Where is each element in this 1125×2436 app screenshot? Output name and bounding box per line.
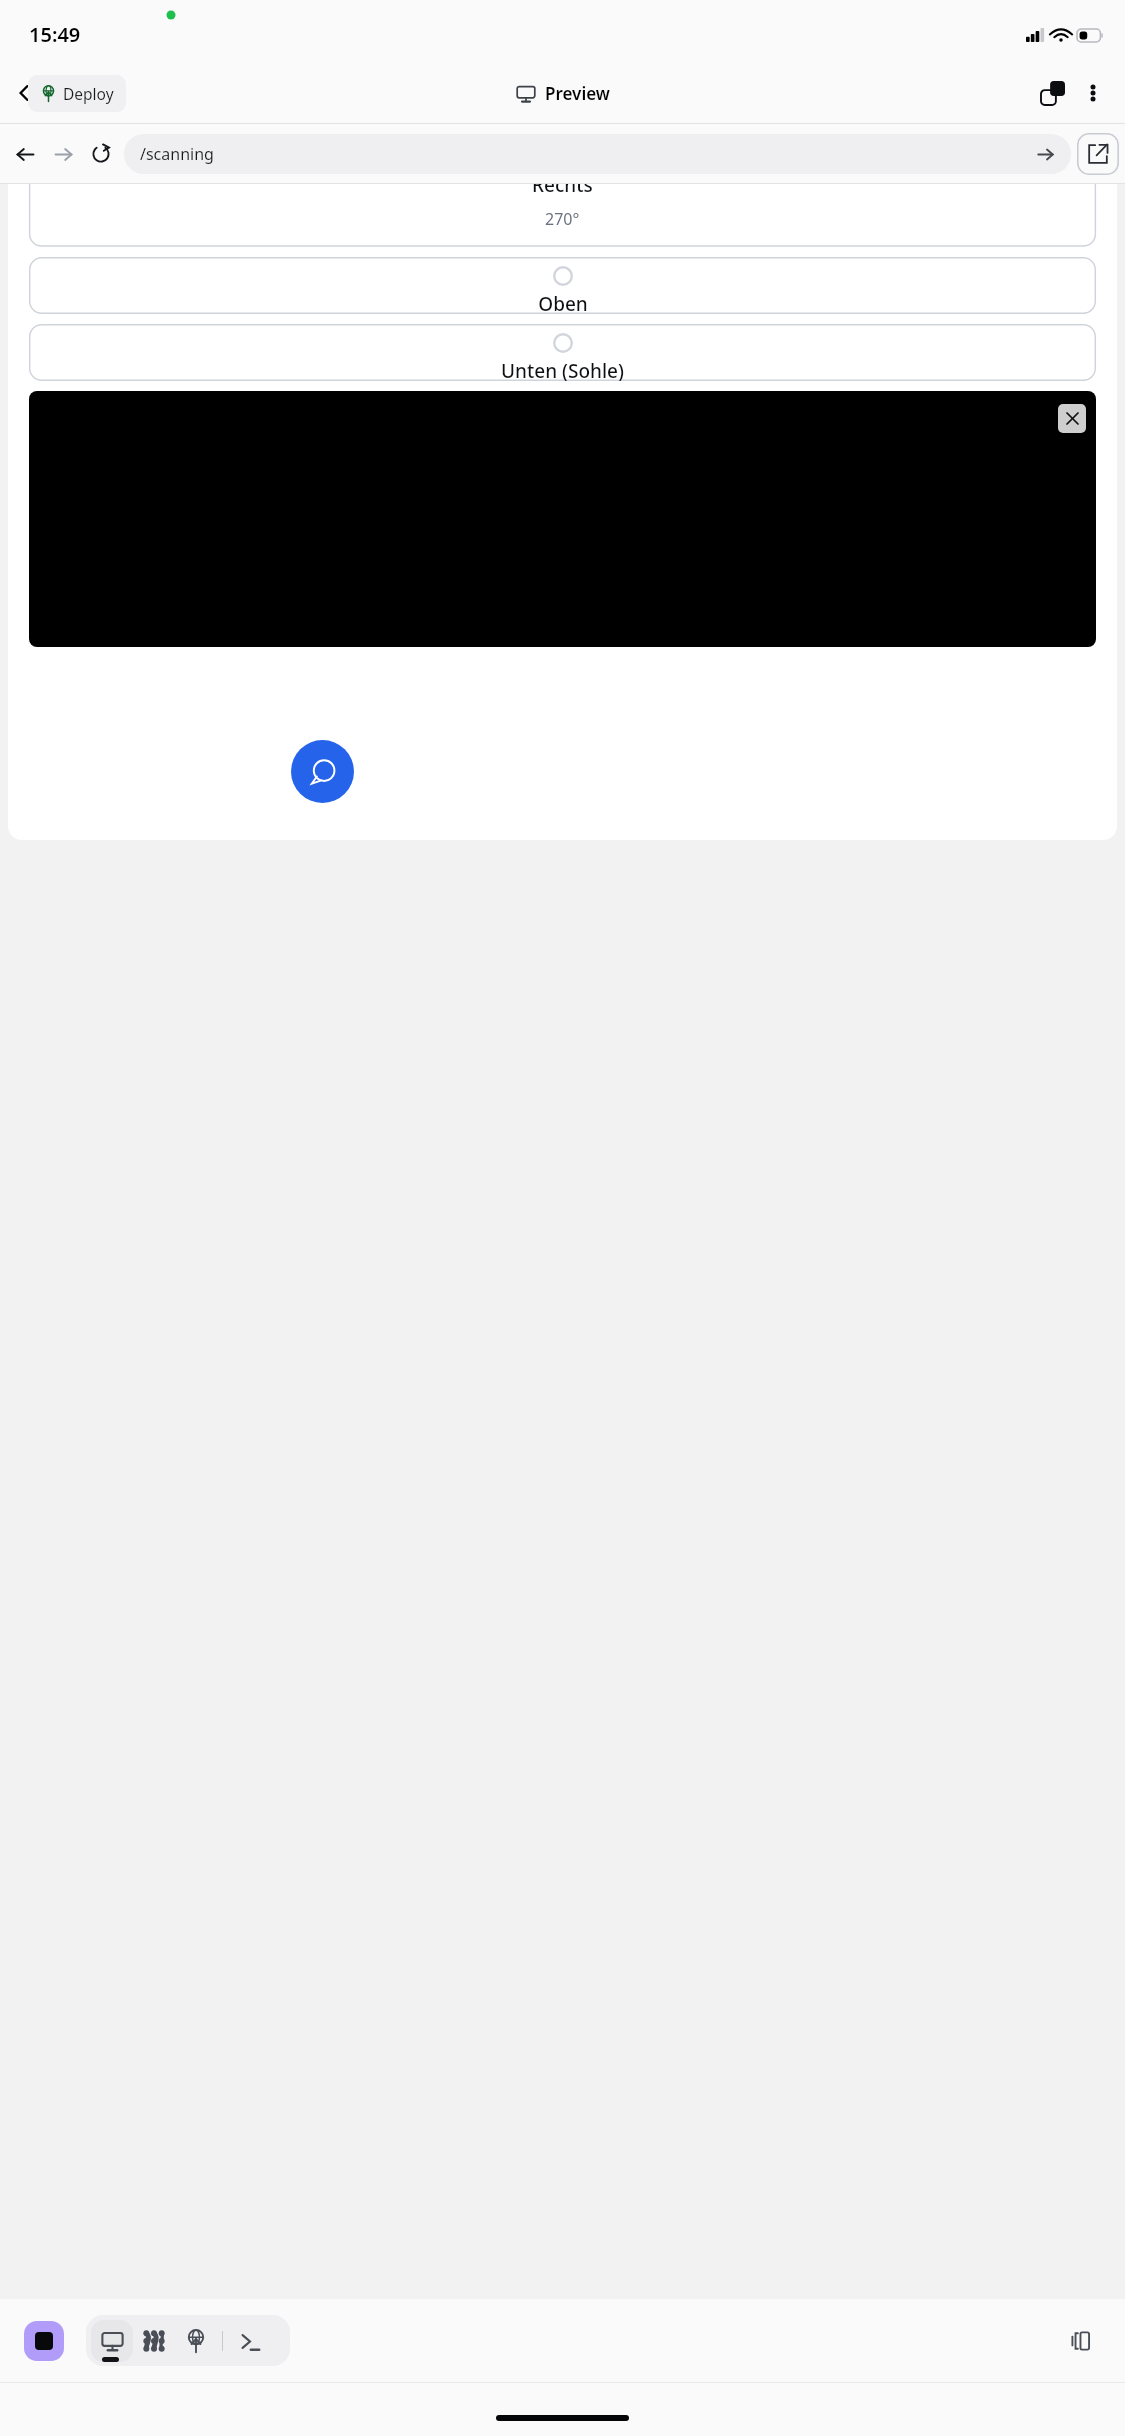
button[interactable]: Rotate device	[1059, 2319, 1103, 2363]
button[interactable]: Reload	[82, 135, 120, 173]
button[interactable]: Back	[6, 75, 42, 111]
button[interactable]: Navigate forward	[44, 135, 82, 173]
button[interactable]: Open chat	[291, 740, 354, 803]
button[interactable]: Oben	[29, 257, 1096, 314]
button[interactable]: /scanning	[124, 134, 1071, 174]
button[interactable]: Unten (Sohle)	[29, 324, 1096, 381]
button[interactable]: Tabs	[1033, 73, 1073, 113]
button[interactable]: Terminal	[228, 2320, 270, 2362]
staticText: Oben	[538, 291, 588, 314]
button[interactable]: Rechts	[30, 184, 1095, 208]
staticText: Rechts	[532, 184, 593, 196]
staticText: 270°	[545, 208, 580, 230]
button[interactable]: Close camera	[1058, 404, 1086, 433]
button[interactable]: Deploy	[175, 2320, 217, 2362]
staticText: Preview	[545, 82, 610, 105]
staticText: /scanning	[140, 143, 1036, 165]
button[interactable]: Deploy	[28, 75, 126, 112]
staticText: Deploy	[63, 83, 114, 104]
button[interactable]: Open externally	[1077, 133, 1119, 175]
staticText: 15:49	[29, 21, 81, 48]
button[interactable]: Preview	[91, 2320, 133, 2362]
button[interactable]: Stop	[24, 2321, 64, 2361]
button[interactable]: Navigate back	[6, 135, 44, 173]
button[interactable]: More options	[1073, 73, 1113, 113]
button[interactable]: Components	[133, 2320, 175, 2362]
button[interactable]: Preview	[516, 82, 610, 105]
staticText: Unten (Sohle)	[501, 358, 624, 381]
